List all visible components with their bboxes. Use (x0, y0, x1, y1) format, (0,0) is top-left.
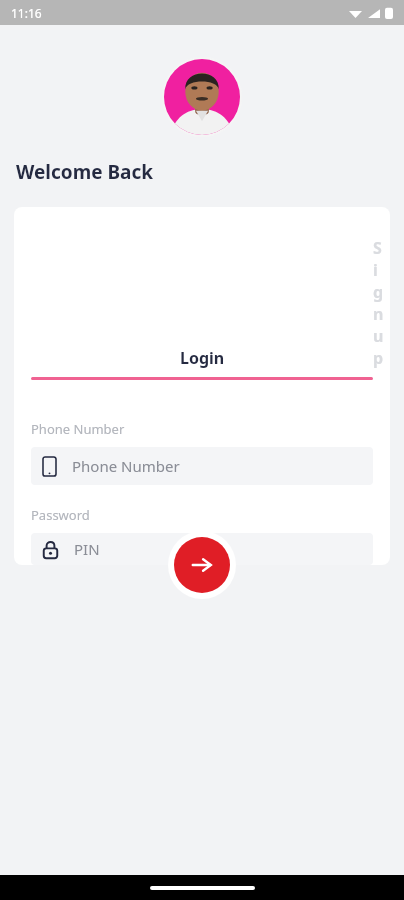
button[interactable]: Submit (174, 537, 230, 593)
staticText: Welcome Back (16, 159, 154, 185)
staticText: Login (180, 347, 225, 369)
button[interactable]: Profile photo (162, 57, 242, 137)
staticText: Password (31, 506, 90, 524)
staticText: PIN (74, 539, 100, 559)
staticText: Phone Number (72, 456, 180, 476)
button[interactable]: Phone Number (31, 447, 373, 485)
button[interactable]: PIN (31, 533, 373, 565)
staticText: Phone Number (31, 420, 125, 438)
button[interactable]: Login (31, 347, 373, 380)
staticText: 11:16 (11, 5, 42, 21)
